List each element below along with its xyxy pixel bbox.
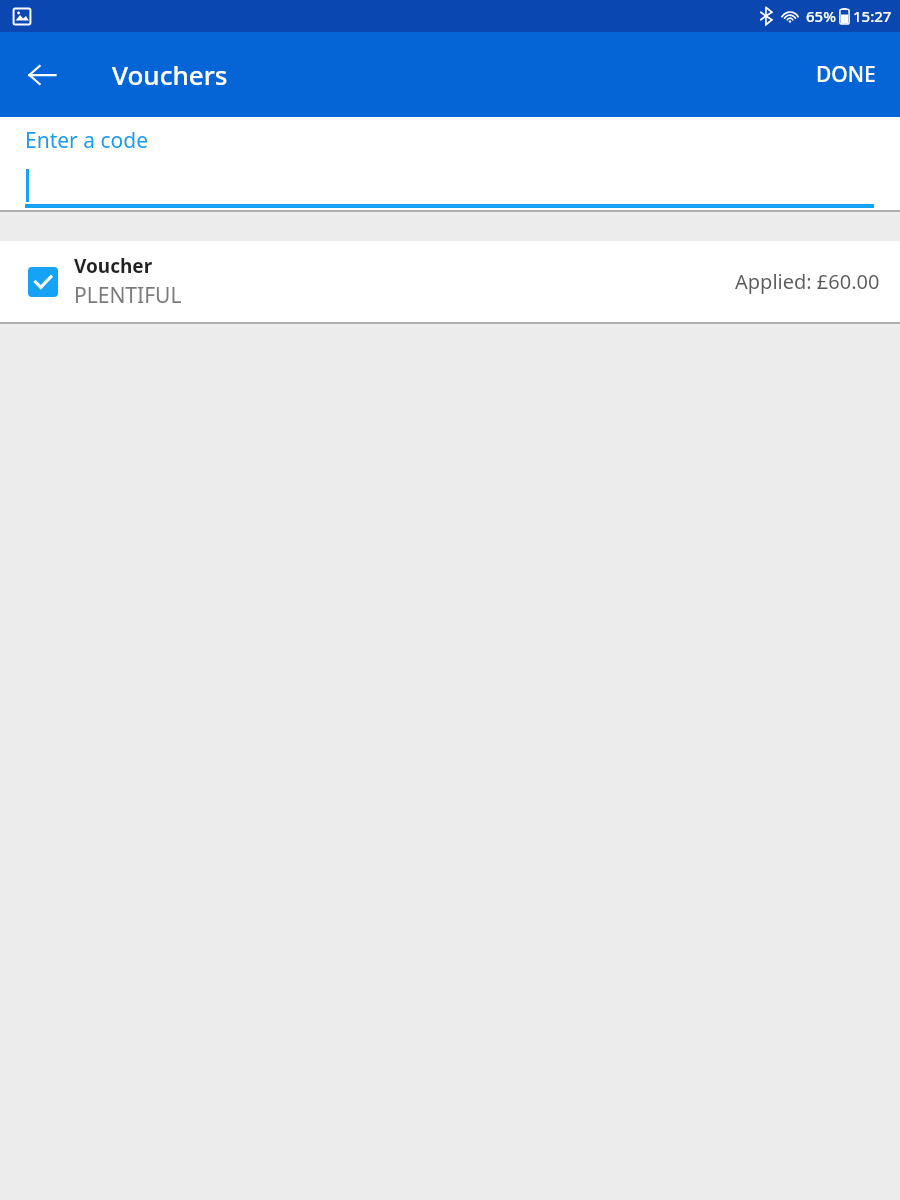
staticText: DONE <box>816 60 876 89</box>
button[interactable]: Voucher applied checkbox <box>28 267 58 297</box>
staticText: Voucher <box>74 253 153 279</box>
button[interactable]: Voucher applied checkbox <box>0 241 900 322</box>
button[interactable]: Back <box>14 47 70 103</box>
staticText: 15:27 <box>853 6 892 26</box>
staticText: Applied: £60.00 <box>735 268 880 295</box>
staticText: Vouchers <box>112 57 228 92</box>
staticText: Enter a code <box>25 126 148 155</box>
button[interactable]: Enter a code <box>0 117 900 210</box>
button[interactable]: DONE <box>802 48 890 101</box>
staticText: 65% <box>806 6 836 26</box>
staticText: PLENTIFUL <box>74 281 182 310</box>
